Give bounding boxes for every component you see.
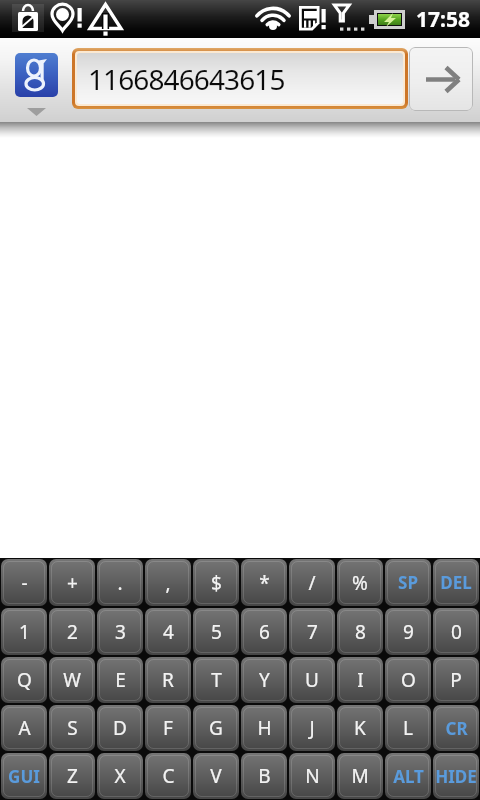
button[interactable]: - bbox=[1, 559, 47, 606]
button[interactable]: A bbox=[1, 705, 47, 751]
staticText: . bbox=[117, 570, 123, 596]
staticText: 2 bbox=[67, 619, 78, 645]
button[interactable]: W bbox=[49, 657, 95, 703]
button[interactable]: Y bbox=[241, 657, 287, 703]
staticText: N bbox=[305, 763, 320, 789]
button[interactable]: M bbox=[337, 753, 383, 799]
button[interactable]: $ bbox=[193, 559, 239, 606]
button[interactable]: I bbox=[337, 657, 383, 703]
staticText: V bbox=[210, 763, 222, 789]
button[interactable]: H bbox=[241, 705, 287, 751]
staticText: * bbox=[259, 570, 270, 596]
button[interactable]: , bbox=[145, 559, 191, 606]
button[interactable]: N bbox=[289, 753, 335, 799]
button[interactable]: P bbox=[433, 657, 479, 703]
staticText: T bbox=[211, 667, 222, 693]
button[interactable]: + bbox=[49, 559, 95, 606]
staticText: % bbox=[352, 570, 368, 596]
button[interactable]: 7 bbox=[289, 608, 335, 655]
button[interactable]: C bbox=[145, 753, 191, 799]
staticText: / bbox=[308, 570, 316, 596]
staticText: I bbox=[357, 667, 364, 693]
button[interactable]: Search provider Google bbox=[15, 53, 58, 97]
button[interactable]: HIDE bbox=[433, 753, 479, 799]
staticText: + bbox=[67, 570, 78, 596]
button[interactable]: SP bbox=[385, 559, 431, 606]
button[interactable]: V bbox=[193, 753, 239, 799]
staticText: F bbox=[163, 715, 173, 741]
staticText: $ bbox=[211, 570, 222, 596]
staticText: ALT bbox=[393, 765, 424, 788]
staticText: A bbox=[18, 715, 31, 741]
button[interactable]: 1166846643615 bbox=[77, 53, 403, 104]
staticText: 8 bbox=[355, 619, 366, 645]
staticText: L bbox=[403, 715, 413, 741]
button[interactable]: J bbox=[289, 705, 335, 751]
button[interactable]: DEL bbox=[433, 559, 479, 606]
staticText: 4 bbox=[163, 619, 174, 645]
staticText: W bbox=[63, 667, 81, 693]
staticText: M bbox=[351, 763, 369, 789]
staticText: E bbox=[115, 667, 126, 693]
staticText: GUI bbox=[8, 765, 40, 788]
staticText: O bbox=[401, 667, 416, 693]
button[interactable]: ALT bbox=[385, 753, 431, 799]
button[interactable]: G bbox=[193, 705, 239, 751]
staticText: HIDE bbox=[435, 765, 477, 788]
button[interactable]: 8 bbox=[337, 608, 383, 655]
button[interactable]: . bbox=[97, 559, 143, 606]
button[interactable]: 2 bbox=[49, 608, 95, 655]
button[interactable]: 1 bbox=[1, 608, 47, 655]
staticText: 17:58 bbox=[416, 5, 470, 34]
staticText: 1 bbox=[19, 619, 30, 645]
staticText: S bbox=[67, 715, 78, 741]
button[interactable]: Z bbox=[49, 753, 95, 799]
staticText: 0 bbox=[451, 619, 462, 645]
button[interactable]: Change search provider bbox=[15, 99, 58, 121]
button[interactable]: 6 bbox=[241, 608, 287, 655]
button[interactable]: E bbox=[97, 657, 143, 703]
button[interactable]: 9 bbox=[385, 608, 431, 655]
staticText: Q bbox=[17, 667, 32, 693]
button[interactable]: F bbox=[145, 705, 191, 751]
staticText: B bbox=[258, 763, 271, 789]
button[interactable]: X bbox=[97, 753, 143, 799]
staticText: Z bbox=[67, 763, 78, 789]
button[interactable]: Q bbox=[1, 657, 47, 703]
staticText: - bbox=[21, 570, 28, 596]
button[interactable]: O bbox=[385, 657, 431, 703]
button[interactable]: 4 bbox=[145, 608, 191, 655]
button[interactable]: T bbox=[193, 657, 239, 703]
button[interactable]: % bbox=[337, 559, 383, 606]
button[interactable]: U bbox=[289, 657, 335, 703]
staticText: 7 bbox=[307, 619, 318, 645]
staticText: H bbox=[257, 715, 272, 741]
staticText: U bbox=[305, 667, 319, 693]
button[interactable]: S bbox=[49, 705, 95, 751]
staticText: DEL bbox=[440, 571, 472, 594]
button[interactable]: B bbox=[241, 753, 287, 799]
button[interactable]: R bbox=[145, 657, 191, 703]
staticText: 9 bbox=[403, 619, 414, 645]
staticText: SP bbox=[398, 571, 418, 594]
staticText: R bbox=[162, 667, 174, 693]
button[interactable]: D bbox=[97, 705, 143, 751]
button[interactable]: K bbox=[337, 705, 383, 751]
staticText: Y bbox=[259, 667, 270, 693]
button[interactable]: 5 bbox=[193, 608, 239, 655]
button[interactable]: / bbox=[289, 559, 335, 606]
staticText: 6 bbox=[259, 619, 270, 645]
button[interactable]: 0 bbox=[433, 608, 479, 655]
staticText: 1166846643615 bbox=[88, 60, 285, 98]
staticText: , bbox=[165, 570, 171, 596]
button[interactable]: GUI bbox=[1, 753, 47, 799]
staticText: C bbox=[162, 763, 175, 789]
button[interactable]: 3 bbox=[97, 608, 143, 655]
button[interactable]: CR bbox=[433, 705, 479, 751]
staticText: D bbox=[113, 715, 127, 741]
staticText: 3 bbox=[115, 619, 126, 645]
staticText: J bbox=[309, 715, 315, 741]
button[interactable]: Search bbox=[409, 47, 473, 111]
button[interactable]: * bbox=[241, 559, 287, 606]
button[interactable]: L bbox=[385, 705, 431, 751]
